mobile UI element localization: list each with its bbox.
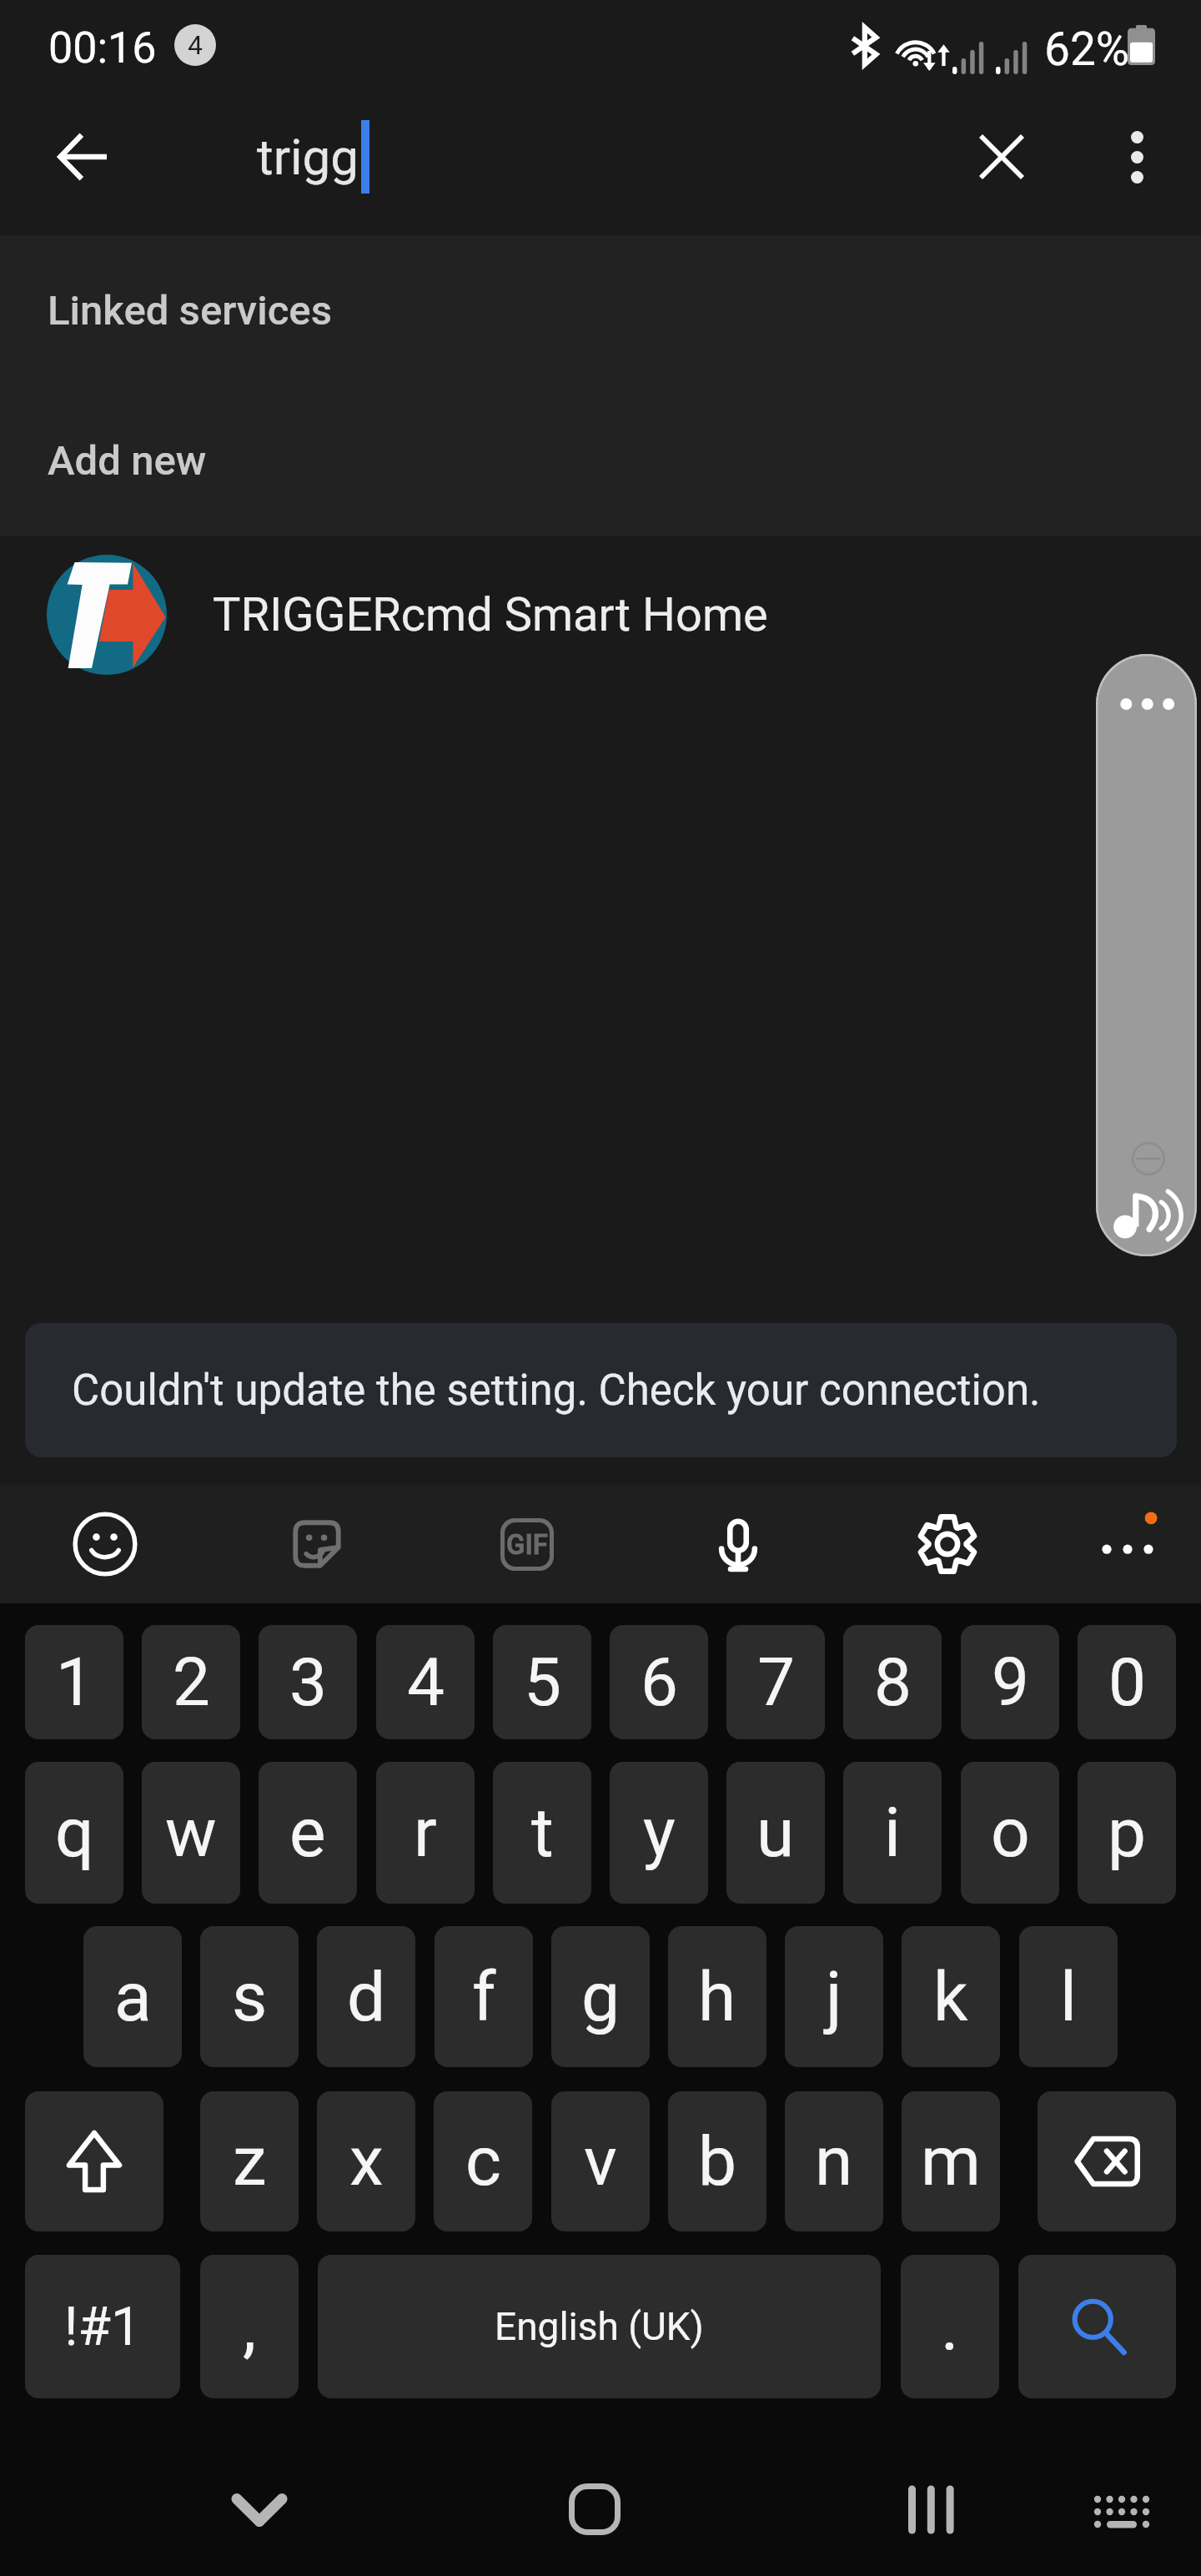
button[interactable]: . — [901, 2255, 999, 2398]
button[interactable]: Volume — [1096, 654, 1197, 1256]
button[interactable]: z — [200, 2091, 299, 2231]
staticText: y — [643, 1793, 676, 1873]
button[interactable]: Backspace — [1038, 2091, 1176, 2231]
button[interactable]: 0 — [1078, 1625, 1176, 1739]
button[interactable]: GIF — [485, 1510, 569, 1578]
button[interactable]: Voice input — [696, 1502, 780, 1586]
button[interactable]: l — [1019, 1926, 1118, 2067]
button[interactable]: y — [610, 1762, 708, 1904]
button[interactable]: Keyboard settings — [906, 1502, 989, 1586]
staticText: q — [55, 1793, 94, 1873]
staticText: 0 — [1108, 1643, 1146, 1722]
button[interactable]: Search — [1018, 2255, 1176, 2398]
staticText: h — [698, 1957, 736, 2037]
staticText: o — [991, 1793, 1030, 1873]
staticText: u — [756, 1793, 795, 1873]
staticText: 6 — [641, 1643, 678, 1722]
staticText: l — [1060, 1957, 1077, 2037]
staticText: 00:16 — [48, 23, 157, 71]
button[interactable]: 4 — [376, 1625, 475, 1739]
button[interactable]: b — [668, 2091, 766, 2231]
button[interactable]: j — [785, 1926, 883, 2067]
staticText: v — [584, 2121, 617, 2201]
button[interactable]: n — [785, 2091, 883, 2231]
button[interactable]: m — [902, 2091, 1000, 2231]
staticText: Couldn't update the setting. Check your … — [72, 1366, 1041, 1416]
button[interactable]: s — [200, 1926, 299, 2067]
staticText: i — [884, 1793, 901, 1873]
staticText: 8 — [874, 1643, 912, 1722]
button[interactable]: More options — [1093, 113, 1181, 201]
button[interactable]: t — [493, 1762, 591, 1904]
staticText: j — [826, 1957, 842, 2037]
button[interactable]: 9 — [961, 1625, 1059, 1739]
button[interactable]: p — [1078, 1762, 1176, 1904]
button[interactable]: a — [83, 1926, 182, 2067]
button[interactable]: 6 — [610, 1625, 708, 1739]
staticText: 4 — [188, 29, 203, 61]
button[interactable]: x — [317, 2091, 415, 2231]
staticText: m — [921, 2121, 981, 2201]
button[interactable]: e — [259, 1762, 357, 1904]
staticText: 7 — [757, 1643, 795, 1722]
button[interactable]: Recent apps — [884, 2463, 977, 2556]
button[interactable]: Shift — [25, 2091, 163, 2231]
staticText: p — [1108, 1793, 1147, 1873]
button[interactable]: w — [142, 1762, 240, 1904]
staticText: a — [114, 1957, 152, 2037]
staticText: d — [347, 1957, 386, 2037]
staticText: English (UK) — [495, 2304, 704, 2349]
staticText: 2 — [173, 1643, 210, 1722]
button[interactable]: 5 — [493, 1625, 591, 1739]
button[interactable]: u — [726, 1762, 825, 1904]
button[interactable]: Linked services — [0, 235, 1201, 385]
button[interactable]: 1 — [25, 1625, 123, 1739]
staticText: 62% — [1044, 23, 1130, 69]
button[interactable]: Add new — [0, 385, 1201, 536]
button[interactable]: v — [551, 2091, 650, 2231]
button[interactable]: d — [317, 1926, 415, 2067]
button[interactable]: , — [200, 2255, 299, 2398]
staticText: k — [933, 1957, 968, 2037]
staticText: trigg — [257, 128, 359, 186]
button[interactable]: 8 — [843, 1625, 942, 1739]
button[interactable]: k — [902, 1926, 1000, 2067]
button[interactable]: c — [434, 2091, 532, 2231]
staticText: t — [531, 1793, 554, 1873]
staticText: x — [349, 2121, 384, 2201]
button[interactable]: Home — [548, 2463, 641, 2556]
button[interactable]: 2 — [142, 1625, 240, 1739]
button[interactable]: i — [843, 1762, 942, 1904]
button[interactable]: h — [668, 1926, 766, 2067]
button[interactable]: !#1 — [25, 2255, 180, 2398]
button[interactable]: r — [376, 1762, 475, 1904]
button[interactable]: Hide keyboard — [213, 2463, 306, 2557]
staticText: 3 — [289, 1643, 327, 1722]
button[interactable]: Stickers — [275, 1502, 359, 1586]
button[interactable]: g — [551, 1926, 650, 2067]
button[interactable]: More — [1086, 1502, 1169, 1586]
staticText: TRIGGERcmd Smart Home — [213, 587, 768, 642]
staticText: GIF — [506, 1528, 548, 1561]
staticText: !#1 — [64, 2296, 141, 2358]
button[interactable]: English (UK) — [318, 2255, 881, 2398]
button[interactable]: Change keyboard — [1075, 2465, 1168, 2558]
button[interactable]: o — [961, 1762, 1059, 1904]
staticText: 5 — [524, 1643, 561, 1722]
staticText: f — [472, 1957, 496, 2037]
staticText: 1 — [56, 1643, 93, 1722]
button[interactable]: Couldn't update the setting. Check your … — [25, 1323, 1177, 1457]
staticText: 4 — [407, 1643, 445, 1722]
button[interactable]: q — [25, 1762, 123, 1904]
staticText: g — [581, 1957, 621, 2037]
staticText: . — [941, 2287, 959, 2367]
button[interactable]: TRIGGERcmd Smart Home — [0, 536, 1201, 694]
button[interactable]: Emoji — [63, 1502, 147, 1586]
button[interactable]: f — [435, 1926, 533, 2067]
button[interactable]: Clear search — [957, 113, 1046, 201]
staticText: Linked services — [48, 287, 332, 335]
staticText: w — [165, 1793, 217, 1873]
button[interactable]: 3 — [259, 1625, 357, 1739]
button[interactable]: Navigate up — [38, 113, 127, 201]
button[interactable]: 7 — [726, 1625, 825, 1739]
